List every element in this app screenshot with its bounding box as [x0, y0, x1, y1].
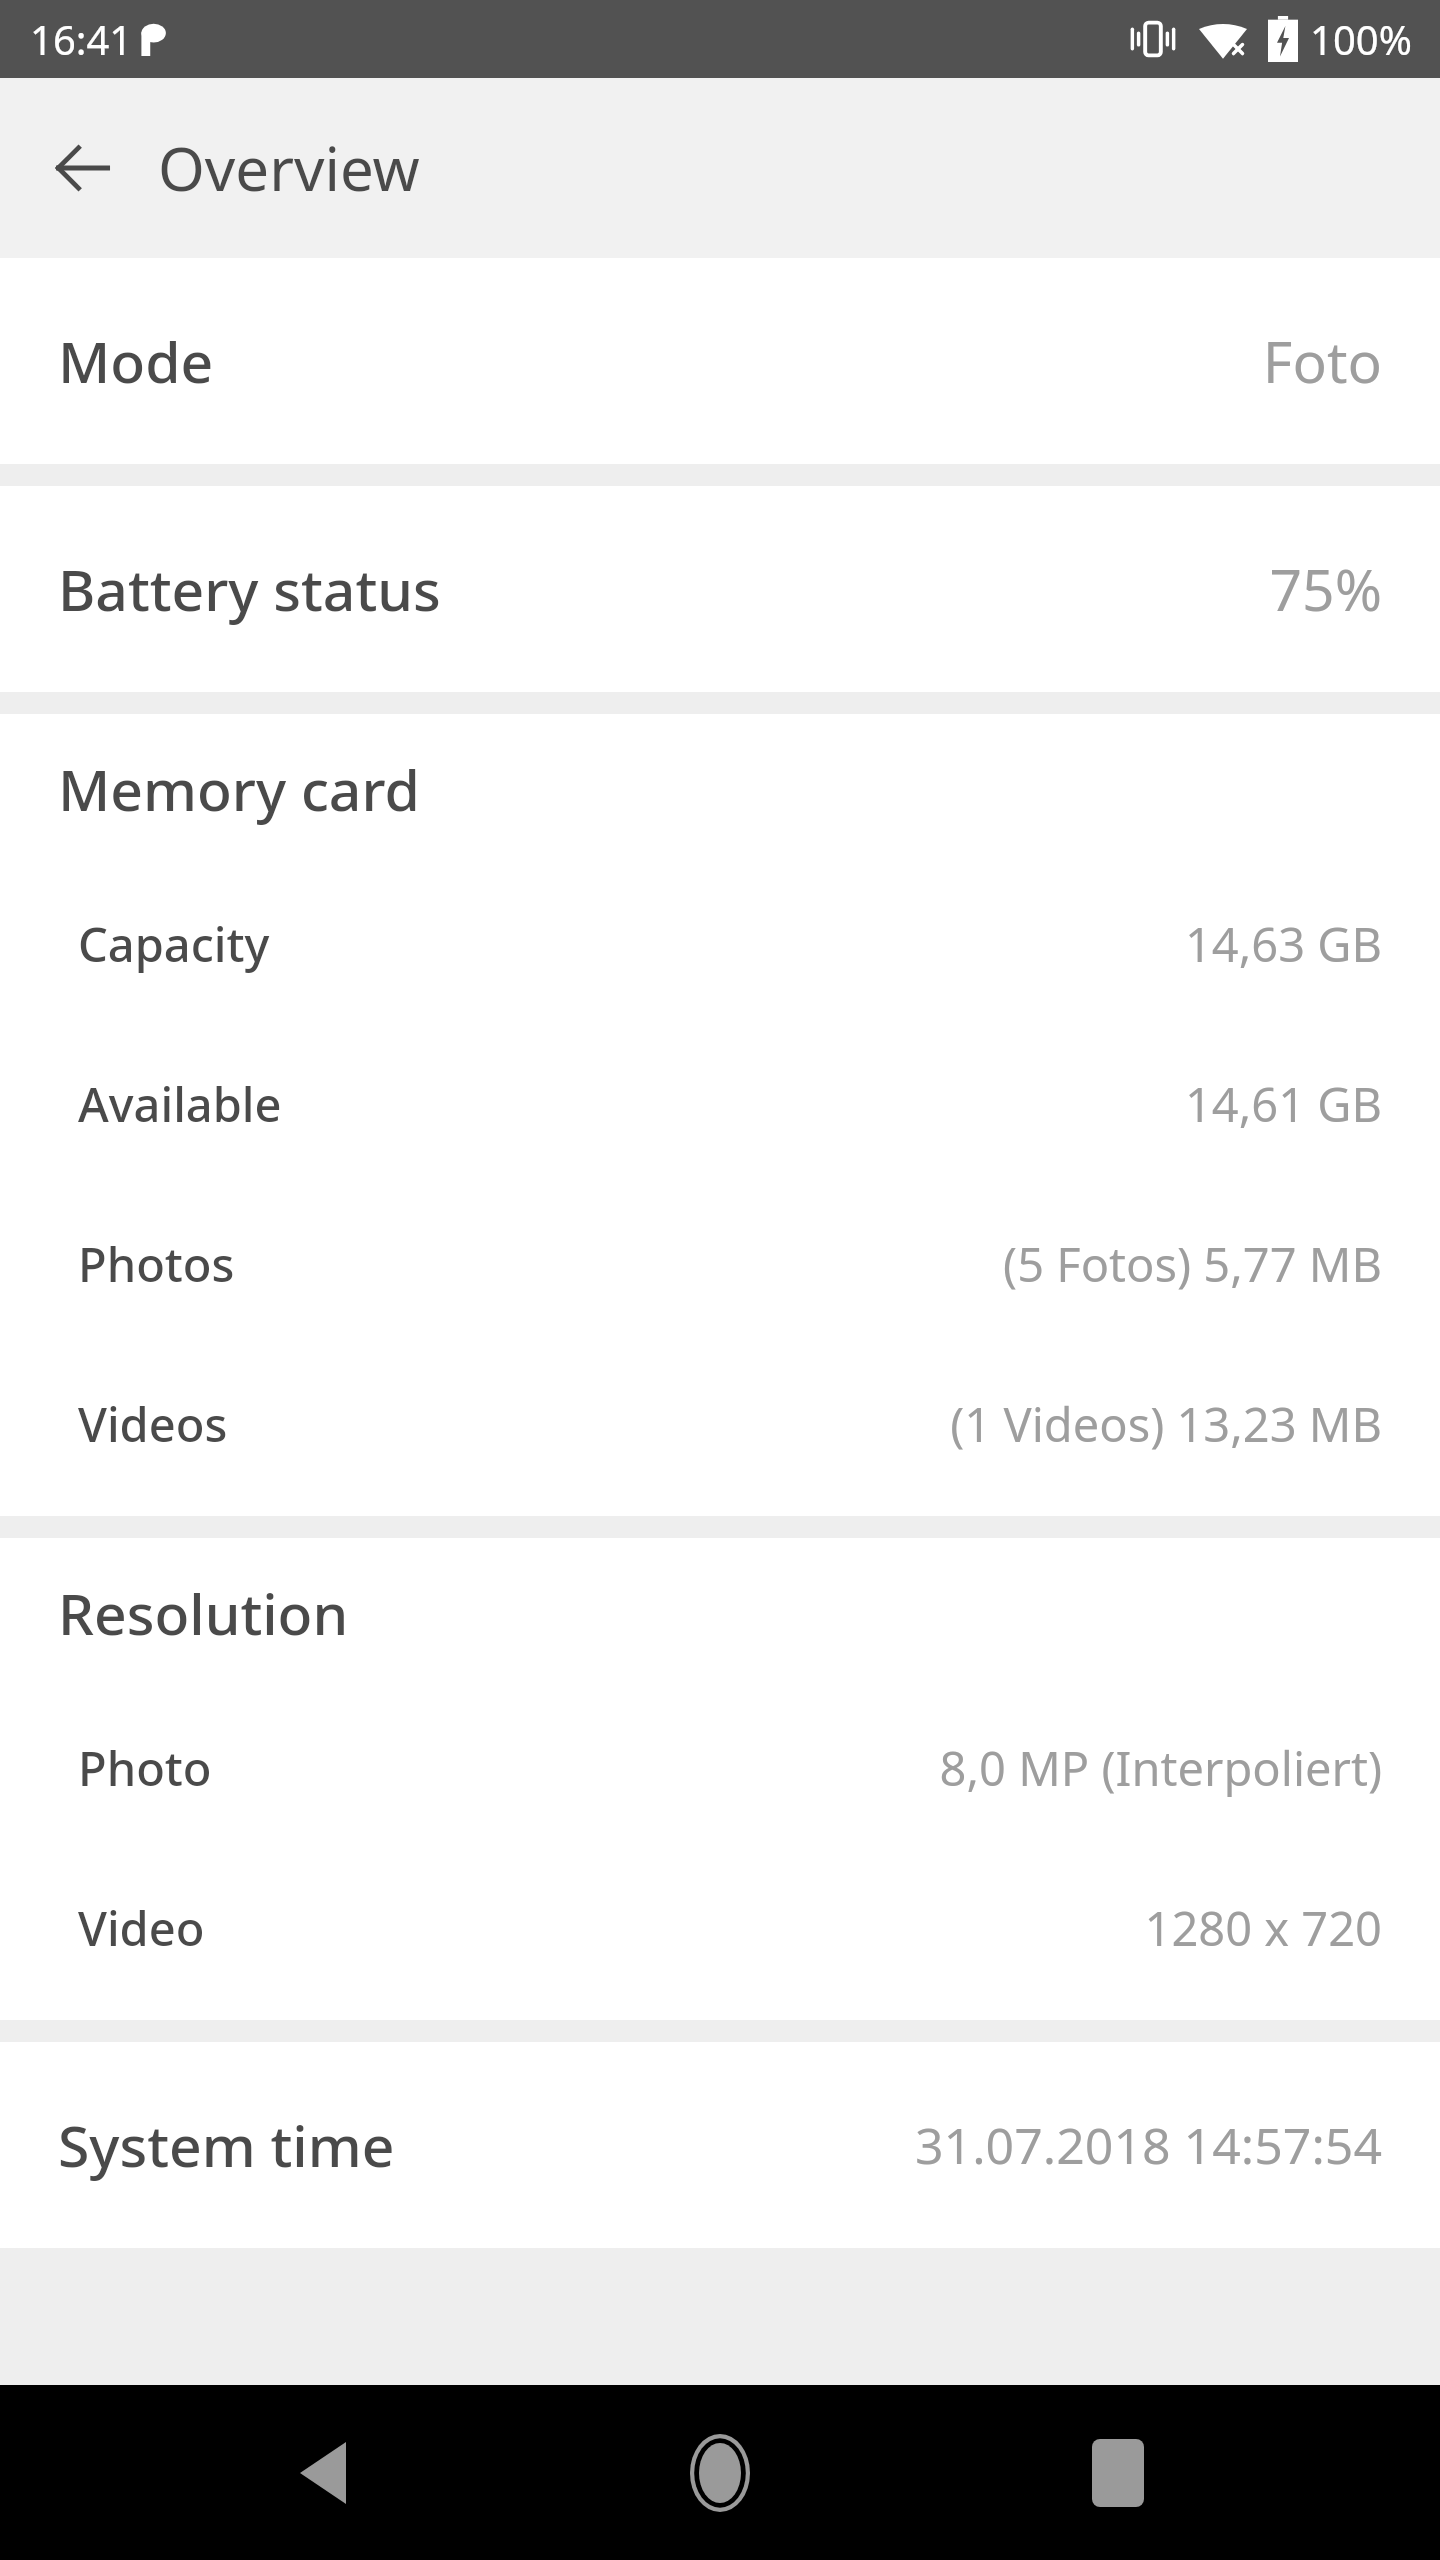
button[interactable]: Back: [28, 113, 138, 223]
staticText: Available: [78, 1072, 1184, 1136]
staticText: 75%: [1269, 550, 1382, 628]
button[interactable]: Videos: [0, 1344, 1440, 1504]
staticText: 31.07.2018 14:57:54: [915, 2111, 1382, 2179]
button[interactable]: Mode: [0, 258, 1440, 464]
button[interactable]: Back: [248, 2398, 398, 2548]
button[interactable]: Photos: [0, 1184, 1440, 1344]
button[interactable]: Battery status: [0, 486, 1440, 692]
staticText: Photo: [78, 1736, 939, 1800]
button[interactable]: Photo: [0, 1688, 1440, 1848]
staticText: Foto: [1262, 322, 1382, 400]
staticText: 14,61 GB: [1184, 1072, 1382, 1136]
staticText: Resolution: [58, 1574, 349, 1652]
staticText: Mode: [58, 322, 1262, 400]
staticText: (5 Fotos) 5,77 MB: [1003, 1232, 1382, 1296]
button[interactable]: Capacity: [0, 864, 1440, 1024]
button[interactable]: System time: [0, 2042, 1440, 2248]
staticText: Battery status: [58, 550, 1269, 628]
staticText: Video: [78, 1896, 1144, 1960]
staticText: (1 Videos) 13,23 MB: [950, 1392, 1382, 1456]
button[interactable]: Video: [0, 1848, 1440, 2008]
staticText: Overview: [158, 127, 420, 209]
button[interactable]: Available: [0, 1024, 1440, 1184]
staticText: 8,0 MP (Interpoliert): [939, 1736, 1382, 1800]
staticText: Photos: [78, 1232, 1003, 1296]
staticText: Videos: [78, 1392, 950, 1456]
staticText: Memory card: [58, 750, 420, 828]
staticText: 16:41: [30, 12, 133, 66]
staticText: 1280 x 720: [1144, 1896, 1382, 1960]
staticText: System time: [58, 2106, 915, 2184]
staticText: 14,63 GB: [1184, 912, 1382, 976]
button[interactable]: Home: [645, 2398, 795, 2548]
button[interactable]: Recent apps: [1043, 2398, 1193, 2548]
staticText: Capacity: [78, 912, 1184, 976]
staticText: 100%: [1310, 12, 1412, 66]
